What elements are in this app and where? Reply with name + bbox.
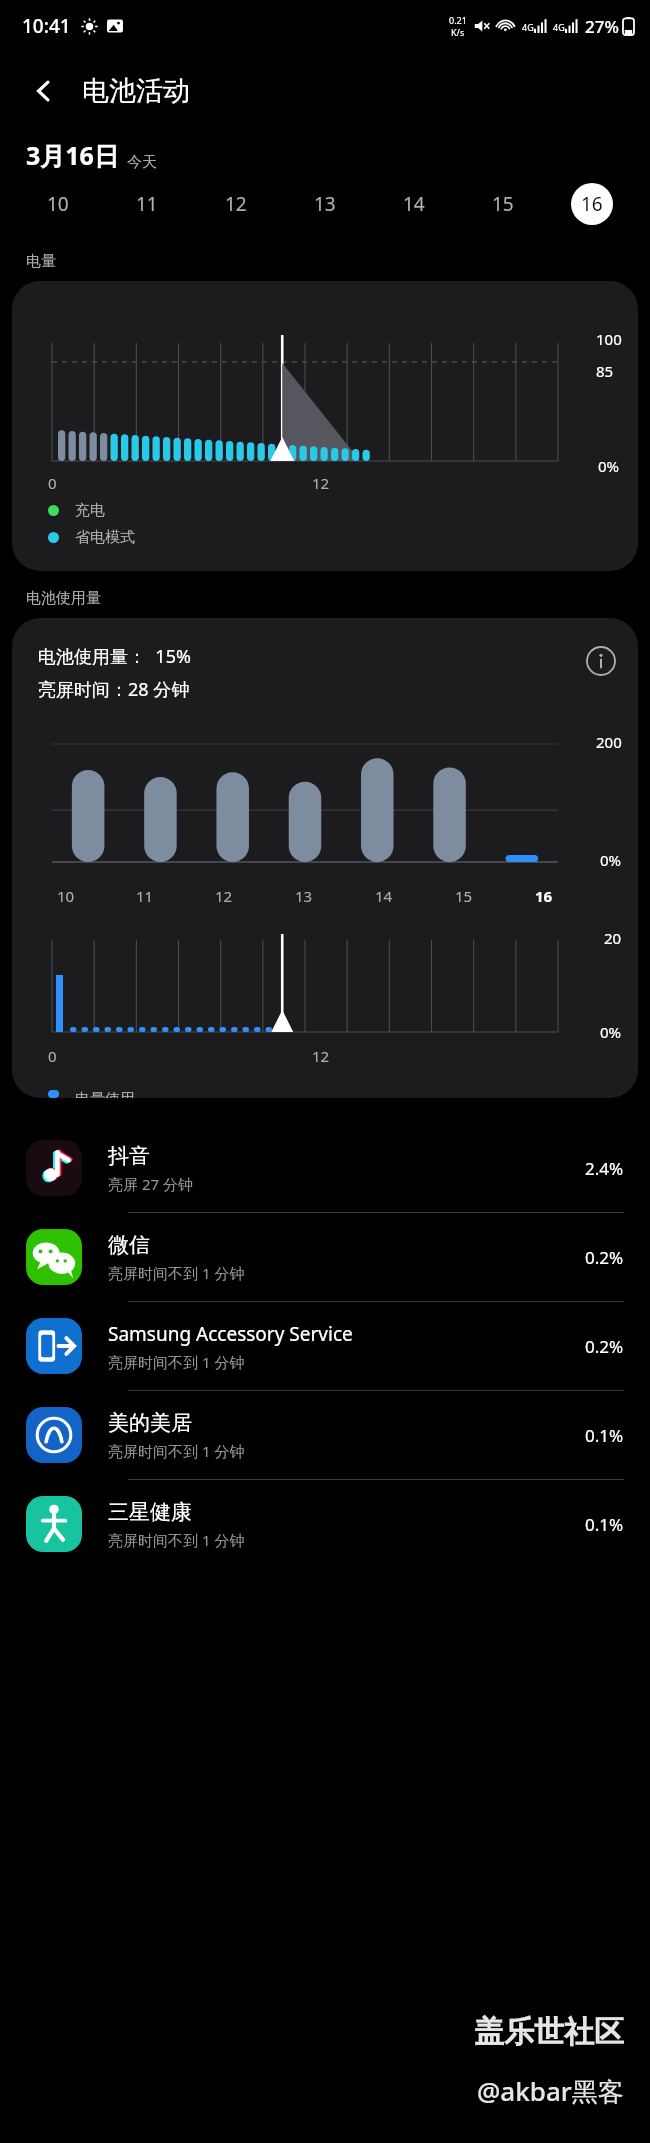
staticText: 200 xyxy=(596,732,622,752)
staticText: 0.21 xyxy=(449,14,467,26)
button[interactable]: 16 xyxy=(547,172,636,236)
staticText: 0 xyxy=(48,1046,57,1066)
staticText: 0.1% xyxy=(585,1513,624,1536)
button[interactable]: 三星健康 xyxy=(0,1480,650,1568)
staticText: 12 xyxy=(215,886,233,906)
staticText: 16 xyxy=(581,191,603,217)
staticText: 3月16日 xyxy=(26,138,119,172)
staticText: 4G xyxy=(553,21,565,33)
staticText: 亮屏时间不到 1 分钟 xyxy=(108,1530,245,1550)
staticText: 85 xyxy=(596,361,614,381)
staticText: 14 xyxy=(403,191,425,217)
staticText: 13 xyxy=(314,191,336,217)
staticText: 20 xyxy=(604,928,622,948)
staticText: 2.4% xyxy=(585,1157,624,1180)
staticText: 0.2% xyxy=(585,1335,624,1358)
staticText: @akbar黑客 xyxy=(477,2073,624,2109)
staticText: 10:41 xyxy=(22,13,71,39)
staticText: 11 xyxy=(136,886,154,906)
staticText: 微信 xyxy=(108,1232,150,1258)
button[interactable]: 10 xyxy=(14,172,102,236)
staticText: 4G xyxy=(522,21,534,33)
staticText: 15 xyxy=(492,191,514,217)
staticText: 27% xyxy=(585,15,619,38)
staticText: 15 xyxy=(455,886,473,906)
button[interactable]: 11 xyxy=(102,172,191,236)
staticText: 盖乐世社区 xyxy=(474,2013,624,2051)
button[interactable]: 美的美居 xyxy=(0,1391,650,1479)
button[interactable]: 15 xyxy=(458,172,547,236)
staticText: K/s xyxy=(451,26,465,38)
button[interactable]: 微信 xyxy=(0,1213,650,1301)
button[interactable]: 100 xyxy=(12,281,638,571)
staticText: 0 xyxy=(48,473,57,493)
staticText: 12 xyxy=(312,1046,330,1066)
staticText: 三星健康 xyxy=(108,1499,192,1525)
staticText: 亮屏时间：28 分钟 xyxy=(38,677,190,702)
staticText: 电池使用量： 15% xyxy=(38,644,191,669)
button[interactable]: Back xyxy=(22,69,66,113)
staticText: 省电模式 xyxy=(75,528,135,547)
staticText: 亮屏时间不到 1 分钟 xyxy=(108,1352,245,1372)
staticText: Samsung Accessory Service xyxy=(108,1321,353,1347)
staticText: 电量 xyxy=(26,252,56,271)
staticText: 今天 xyxy=(127,153,157,172)
staticText: 美的美居 xyxy=(108,1410,192,1436)
staticText: 电池活动 xyxy=(82,74,190,108)
staticText: 0% xyxy=(598,456,620,476)
staticText: 0% xyxy=(600,1022,622,1042)
staticText: 10 xyxy=(57,886,75,906)
staticText: 0% xyxy=(600,850,622,870)
staticText: 充电 xyxy=(75,501,105,520)
staticText: 12 xyxy=(312,473,330,493)
staticText: 14 xyxy=(375,886,393,906)
staticText: 亮屏时间不到 1 分钟 xyxy=(108,1263,245,1283)
staticText: 16 xyxy=(535,886,553,906)
button[interactable]: 12 xyxy=(191,172,280,236)
staticText: 13 xyxy=(295,886,313,906)
staticText: 抖音 xyxy=(108,1143,150,1169)
staticText: 亮屏时间不到 1 分钟 xyxy=(108,1441,245,1461)
button[interactable]: 13 xyxy=(280,172,369,236)
staticText: 0.2% xyxy=(585,1246,624,1269)
staticText: 亮屏 27 分钟 xyxy=(108,1174,193,1194)
button[interactable]: 抖音 xyxy=(0,1124,650,1212)
staticText: 100 xyxy=(596,329,622,349)
staticText: 0.1% xyxy=(585,1424,624,1447)
button[interactable]: Info xyxy=(584,644,618,678)
staticText: 电池使用量 xyxy=(26,589,101,608)
staticText: 11 xyxy=(136,191,158,217)
staticText: 12 xyxy=(225,191,247,217)
button[interactable]: Samsung Accessory Service xyxy=(0,1302,650,1390)
button[interactable]: 14 xyxy=(369,172,458,236)
staticText: 电量使用 xyxy=(75,1090,135,1098)
staticText: 10 xyxy=(47,191,69,217)
